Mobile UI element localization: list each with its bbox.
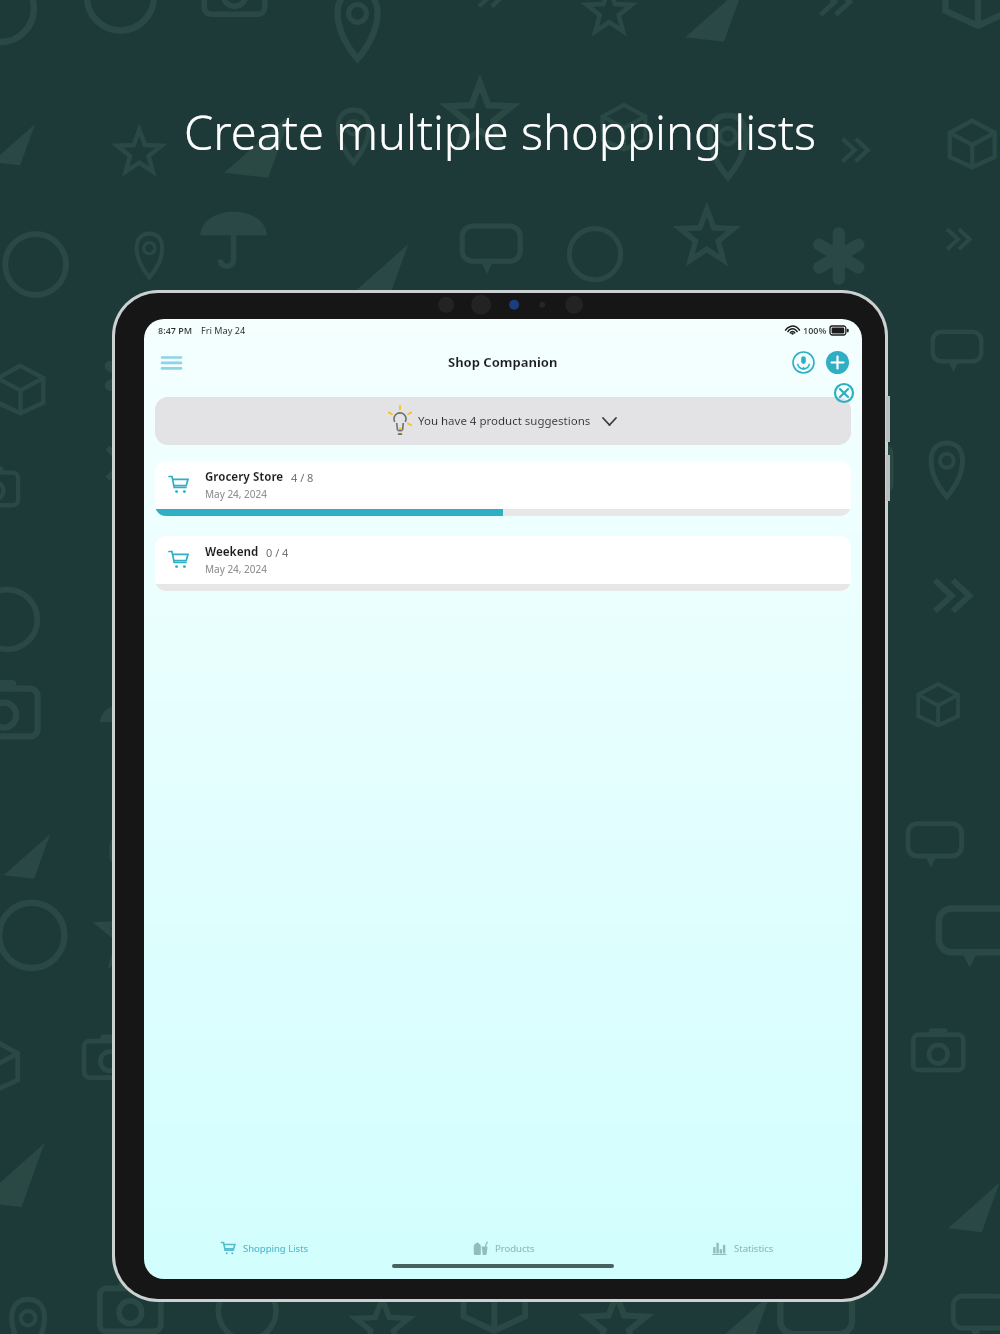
button[interactable]: Statistics: [623, 1233, 862, 1263]
staticText: 0 / 4: [266, 545, 289, 560]
button[interactable]: Grocery Store: [155, 461, 851, 516]
staticText: May 24, 2024: [205, 487, 267, 501]
button[interactable]: Menu: [154, 345, 188, 379]
staticText: Statistics: [734, 1242, 774, 1255]
staticText: Weekend: [205, 544, 259, 560]
button[interactable]: Voice input: [788, 347, 818, 377]
staticText: Shopping Lists: [243, 1242, 309, 1255]
staticText: 100%: [803, 324, 827, 336]
staticText: Shop Companion: [448, 353, 558, 371]
button[interactable]: You have 4 product suggestions: [155, 397, 851, 445]
button[interactable]: Shopping Lists: [144, 1233, 384, 1263]
staticText: May 24, 2024: [205, 562, 267, 576]
staticText: Create multiple shopping lists: [0, 100, 1000, 164]
staticText: 4 / 8: [291, 470, 314, 485]
button[interactable]: Products: [384, 1233, 623, 1263]
staticText: Products: [495, 1242, 535, 1255]
button[interactable]: Dismiss suggestions: [833, 382, 855, 404]
staticText: Grocery Store: [205, 469, 284, 485]
staticText: You have 4 product suggestions: [418, 413, 591, 429]
button[interactable]: Add list: [822, 347, 852, 377]
staticText: 8:47 PM: [158, 324, 193, 336]
staticText: Fri May 24: [201, 324, 246, 336]
button[interactable]: Weekend: [155, 536, 851, 591]
